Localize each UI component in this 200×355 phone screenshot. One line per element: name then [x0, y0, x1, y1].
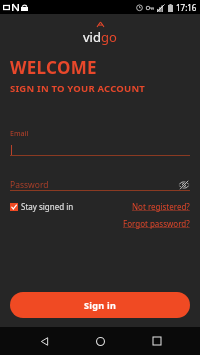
- button[interactable]: Back: [31, 328, 57, 354]
- staticText: vid: [83, 28, 101, 46]
- button[interactable]: [10, 144, 190, 155]
- staticText: Email: [10, 129, 29, 139]
- button[interactable]: Show password: [178, 179, 190, 190]
- staticText: WELCOME: [10, 56, 97, 79]
- staticText: SIGN IN TO YOUR ACCOUNT: [10, 82, 146, 95]
- button[interactable]: Not registered?: [132, 201, 190, 212]
- staticText: Sign in: [84, 299, 117, 311]
- staticText: go: [101, 28, 117, 46]
- staticText: 17:16: [176, 2, 197, 13]
- button[interactable]: Forgot password?: [123, 218, 190, 229]
- staticText: Forgot password?: [123, 218, 190, 229]
- button[interactable]: Recent apps: [144, 328, 170, 354]
- button[interactable]: Stay signed in: [10, 201, 74, 212]
- staticText: Password: [10, 179, 49, 190]
- button[interactable]: Sign in: [10, 292, 190, 318]
- staticText: Not registered?: [132, 201, 190, 212]
- button[interactable]: Home: [87, 328, 113, 354]
- staticText: Stay signed in: [21, 201, 74, 212]
